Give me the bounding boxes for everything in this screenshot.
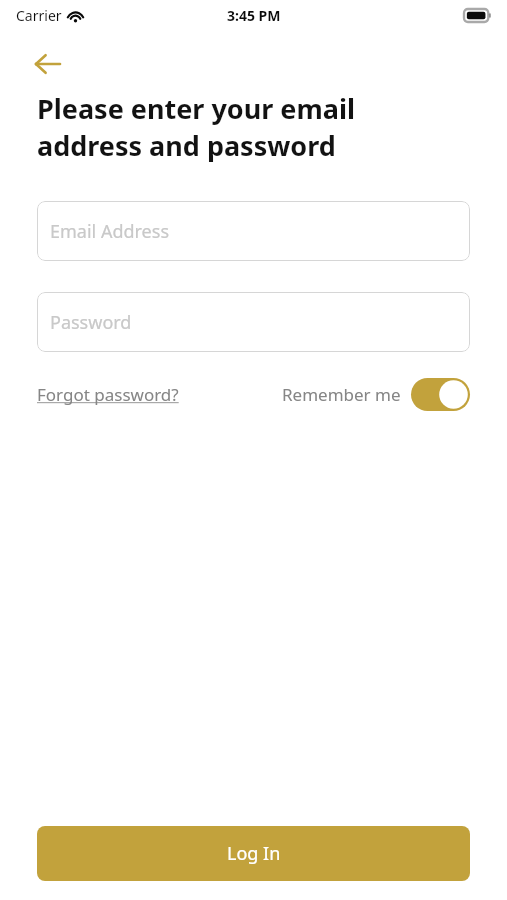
- button[interactable]: Log In: [37, 826, 470, 881]
- staticText: Password: [50, 310, 132, 335]
- button[interactable]: Back: [26, 42, 70, 86]
- button[interactable]: Remember me: [282, 374, 470, 415]
- staticText: Log In: [227, 841, 281, 866]
- staticText: Carrier: [16, 6, 62, 25]
- button[interactable]: Email Address: [37, 201, 470, 261]
- button[interactable]: Forgot password?: [37, 377, 179, 412]
- staticText: Please enter your email: [37, 90, 356, 127]
- staticText: Remember me: [282, 383, 401, 406]
- button[interactable]: Remember me toggle, on: [411, 378, 470, 411]
- staticText: address and password: [37, 127, 336, 164]
- button[interactable]: Password: [37, 292, 470, 352]
- staticText: Email Address: [50, 219, 170, 244]
- staticText: 3:45 PM: [227, 6, 281, 25]
- staticText: Forgot password?: [37, 383, 179, 406]
